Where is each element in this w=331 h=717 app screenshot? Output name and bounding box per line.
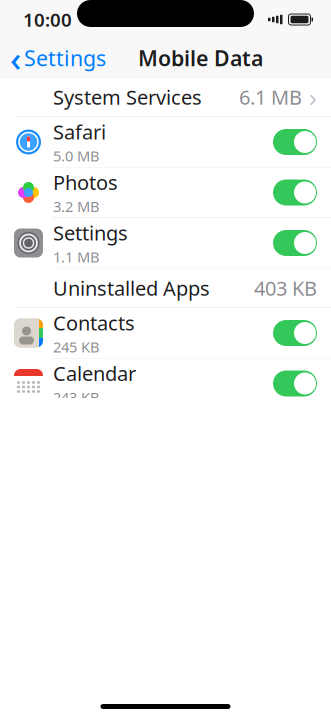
staticText: Safari bbox=[53, 118, 106, 145]
staticText: 245 KB bbox=[53, 337, 100, 356]
staticText: Calendar bbox=[53, 360, 136, 387]
staticText: Contacts bbox=[53, 309, 135, 336]
staticText: System Services bbox=[53, 84, 202, 110]
button[interactable]: Mobile data toggle bbox=[273, 370, 317, 396]
staticText: Settings bbox=[53, 219, 128, 246]
button[interactable]: ‹ bbox=[0, 39, 106, 77]
staticText: 6.1 MB bbox=[239, 84, 302, 110]
button[interactable]: Mobile data toggle bbox=[273, 230, 317, 256]
staticText: ‹ bbox=[10, 35, 21, 81]
staticText: Uninstalled Apps bbox=[53, 275, 210, 301]
staticText: 10:00 bbox=[23, 7, 72, 32]
staticText: 1.1 MB bbox=[53, 247, 100, 266]
staticText: 243 KB bbox=[53, 387, 100, 407]
staticText: › bbox=[309, 80, 317, 114]
staticText: Settings bbox=[24, 44, 106, 72]
staticText: 5.0 MB bbox=[53, 146, 100, 165]
staticText: Mobile Data bbox=[138, 44, 263, 72]
button[interactable]: System Services bbox=[0, 77, 331, 116]
staticText: Photos bbox=[53, 169, 118, 196]
button[interactable]: Mobile data toggle bbox=[273, 179, 317, 205]
staticText: 403 KB bbox=[254, 275, 317, 301]
button[interactable]: Mobile data toggle bbox=[273, 129, 317, 155]
staticText: 3.2 MB bbox=[53, 196, 100, 216]
button[interactable]: Uninstalled Apps bbox=[0, 268, 331, 307]
button[interactable]: Mobile data toggle bbox=[273, 320, 317, 346]
